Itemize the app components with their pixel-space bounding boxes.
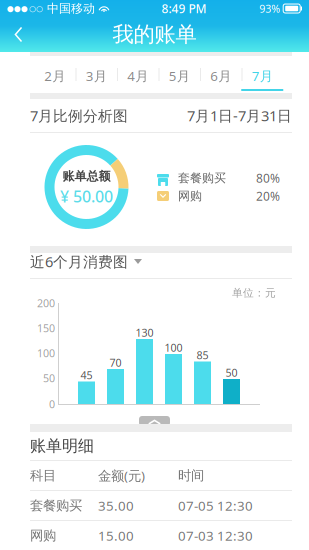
staticText: 0: [49, 397, 55, 411]
button[interactable]: 3月: [75, 56, 117, 93]
button[interactable]: 5月: [158, 56, 200, 93]
staticText: 15.00: [98, 527, 134, 544]
staticText: 50: [43, 371, 55, 385]
staticText: 账单总额: [62, 169, 110, 184]
staticText: 50: [225, 365, 237, 380]
staticText: 100: [37, 346, 55, 360]
staticText: 套餐购买: [178, 171, 226, 185]
staticText: 5月: [169, 67, 190, 85]
staticText: 我的账单: [112, 21, 196, 48]
staticText: 45: [80, 368, 92, 382]
staticText: 130: [135, 325, 153, 340]
staticText: 6月: [210, 67, 231, 85]
button[interactable]: 2月: [34, 56, 75, 93]
staticText: 8:49 PM: [162, 0, 207, 16]
staticText: 80%: [256, 170, 280, 186]
staticText: 7月比例分析图: [30, 106, 128, 125]
staticText: 7月1日-7月31日: [187, 106, 292, 125]
staticText: 套餐购买: [30, 497, 82, 514]
staticText: 近6个月消费图: [30, 252, 128, 271]
button[interactable]: Back: [0, 17, 35, 51]
staticText: ●●●: [7, 4, 28, 13]
staticText: 150: [37, 321, 55, 335]
staticText: 7月: [252, 67, 273, 85]
staticText: 4月: [127, 67, 148, 85]
staticText: 2月: [44, 67, 65, 85]
staticText: 3月: [86, 67, 107, 85]
staticText: 时间: [178, 467, 204, 484]
staticText: 35.00: [98, 497, 134, 514]
button[interactable]: 网购: [0, 521, 309, 550]
staticText: ○○: [29, 4, 43, 13]
button[interactable]: 4月: [117, 56, 158, 93]
button[interactable]: Collapse chart: [139, 416, 170, 426]
button[interactable]: 6月: [200, 56, 241, 93]
staticText: 科目: [30, 467, 56, 484]
staticText: 100: [164, 340, 182, 355]
staticText: 07-05 12:30: [178, 497, 253, 514]
staticText: ¥ 50.00: [60, 186, 113, 207]
button[interactable]: 近6个月消费图: [30, 243, 142, 280]
staticText: 20%: [256, 188, 280, 204]
button[interactable]: 套餐购买: [0, 491, 309, 520]
button[interactable]: 7月: [241, 56, 283, 93]
staticText: 200: [37, 296, 55, 310]
staticText: 中国移动: [47, 1, 95, 16]
staticText: 93%: [259, 1, 280, 16]
staticText: 07-03 12:30: [178, 527, 253, 544]
staticText: 70: [109, 355, 121, 370]
staticText: 85: [196, 348, 208, 362]
staticText: 金额(元): [98, 467, 145, 484]
staticText: 单位：元: [232, 286, 276, 299]
staticText: 网购: [30, 527, 56, 544]
staticText: 网购: [178, 189, 202, 203]
staticText: 账单明细: [30, 436, 94, 456]
button[interactable]: 科目: [0, 461, 309, 490]
